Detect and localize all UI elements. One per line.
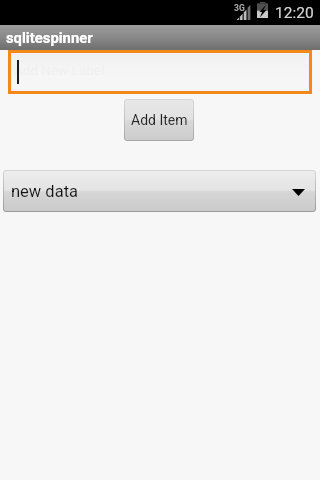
staticText: Add New Label xyxy=(14,62,105,78)
staticText: Add Item xyxy=(131,112,188,128)
other: Battery charging xyxy=(257,2,268,18)
staticText: new data xyxy=(11,182,79,201)
staticText: 3G xyxy=(234,3,245,13)
button[interactable]: Add New Label xyxy=(8,50,312,94)
staticText: sqlitespinner xyxy=(6,29,93,46)
button[interactable]: new data xyxy=(3,170,316,212)
other: Signal strength 3G xyxy=(236,4,251,20)
button[interactable]: Add Item xyxy=(124,99,194,141)
staticText: 12:20 xyxy=(275,4,314,22)
